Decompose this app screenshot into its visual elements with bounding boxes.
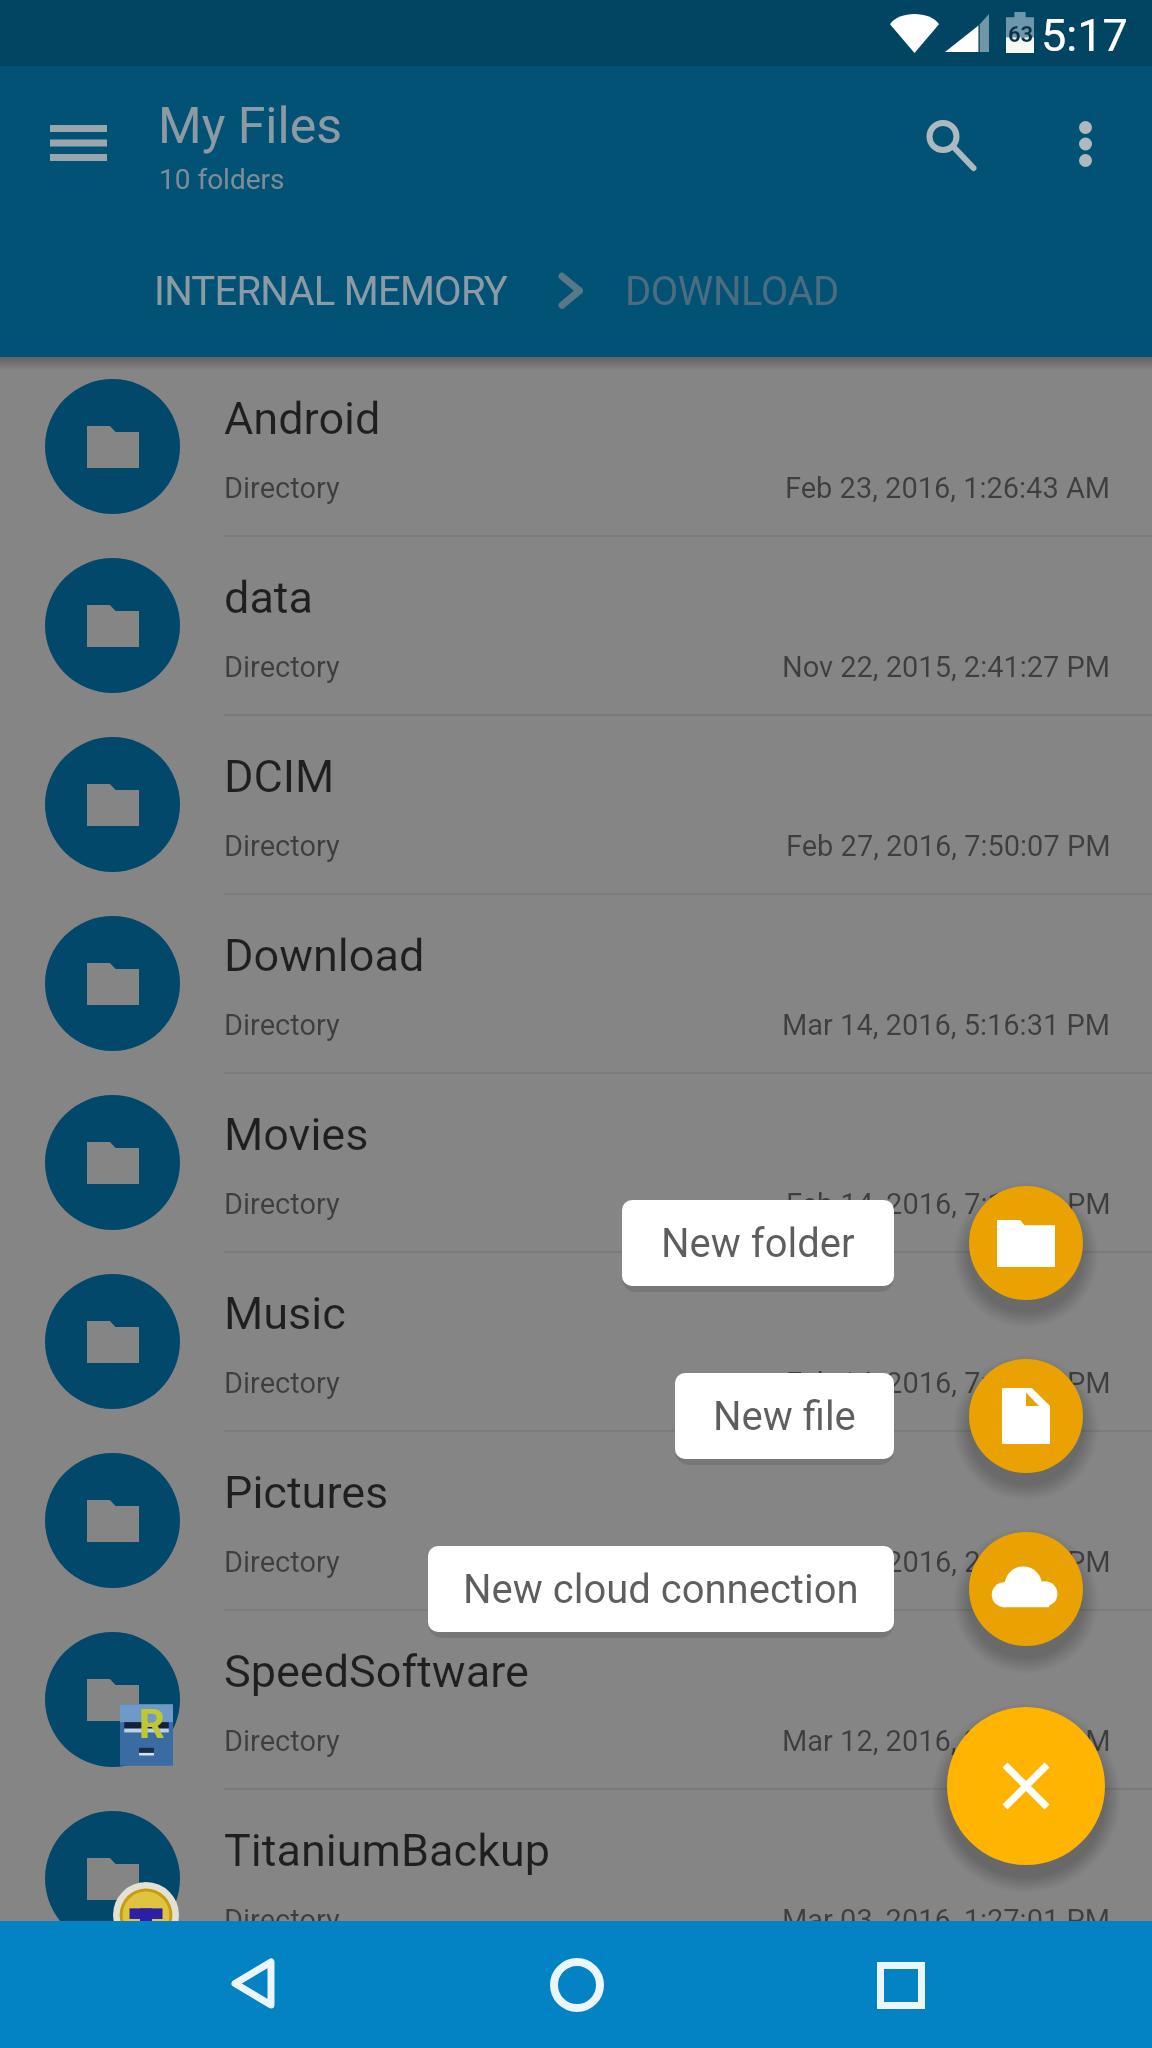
staticText: Download [224,929,425,982]
button[interactable]: Close menu [947,1707,1105,1865]
staticText: SpeedSoftware [224,1645,529,1698]
staticText: DCIM [224,750,335,803]
staticText: Mar 12, 2016, 3:10:12 AM [782,1724,1111,1758]
staticText: Feb 23, 2016, 1:26:43 AM [785,471,1111,505]
button[interactable]: Home [521,1929,633,2041]
staticText: Directory [224,1187,340,1221]
button[interactable]: New cloud connection [969,1532,1083,1646]
staticText: Movies [224,1108,369,1161]
staticText: Directory [224,471,340,505]
staticText: data [224,571,314,624]
button[interactable]: DCIM [0,715,1152,894]
staticText: TitaniumBackup [224,1824,551,1877]
staticText: Feb 14, 2016, 2:13:05 PM [786,1545,1111,1579]
staticText: Feb 27, 2016, 7:50:07 PM [786,829,1111,863]
staticText: New folder [661,1220,855,1267]
button[interactable]: Music [0,1252,1152,1431]
button[interactable]: New folder [622,1200,894,1286]
staticText: Directory [224,1903,340,1937]
staticText: Pictures [224,1466,389,1519]
staticText: Directory [224,1008,340,1042]
button[interactable]: TitaniumBackup [0,1789,1152,1968]
staticText: Directory [224,1366,340,1400]
staticText: Nov 22, 2015, 2:41:27 PM [782,650,1111,684]
staticText: DOWNLOAD [625,268,839,315]
staticText: Directory [224,1724,340,1758]
button[interactable]: New file [675,1373,894,1459]
button[interactable]: Navigation drawer [22,87,134,199]
button[interactable]: Recent apps [845,1929,957,2041]
staticText: Android [224,392,381,445]
button[interactable]: New file [969,1359,1083,1473]
staticText: New cloud connection [463,1566,859,1613]
button[interactable]: Back [197,1927,309,2039]
button[interactable]: More options [1029,88,1141,200]
button[interactable]: New folder [969,1186,1083,1300]
button[interactable]: New cloud connection [428,1546,894,1632]
button[interactable]: Pictures [0,1431,1152,1610]
staticText: 5:17 [1041,9,1128,62]
button[interactable]: Download [0,894,1152,1073]
button[interactable]: Movies [0,1073,1152,1252]
staticText: 10 folders [159,163,285,196]
staticText: New file [713,1393,856,1440]
staticText: Directory [224,829,340,863]
staticText: Mar 03, 2016, 1:27:01 PM [782,1903,1111,1937]
staticText: R [139,1701,165,1748]
button[interactable]: Android [0,357,1152,536]
staticText: Feb 14, 2016, 7:15:22 PM [786,1187,1111,1221]
button[interactable]: data [0,536,1152,715]
staticText: My Files [158,97,342,156]
staticText: Directory [224,650,340,684]
staticText: INTERNAL MEMORY [154,268,508,315]
button[interactable]: R [0,1610,1152,1789]
staticText: Directory [224,1545,340,1579]
staticText: 63 [1008,22,1034,48]
staticText: Mar 14, 2016, 5:16:31 PM [782,1008,1111,1042]
staticText: Music [224,1287,346,1340]
staticText: Feb 14, 2016, 7:12:44 PM [786,1366,1111,1400]
button[interactable]: Search [894,88,1006,200]
